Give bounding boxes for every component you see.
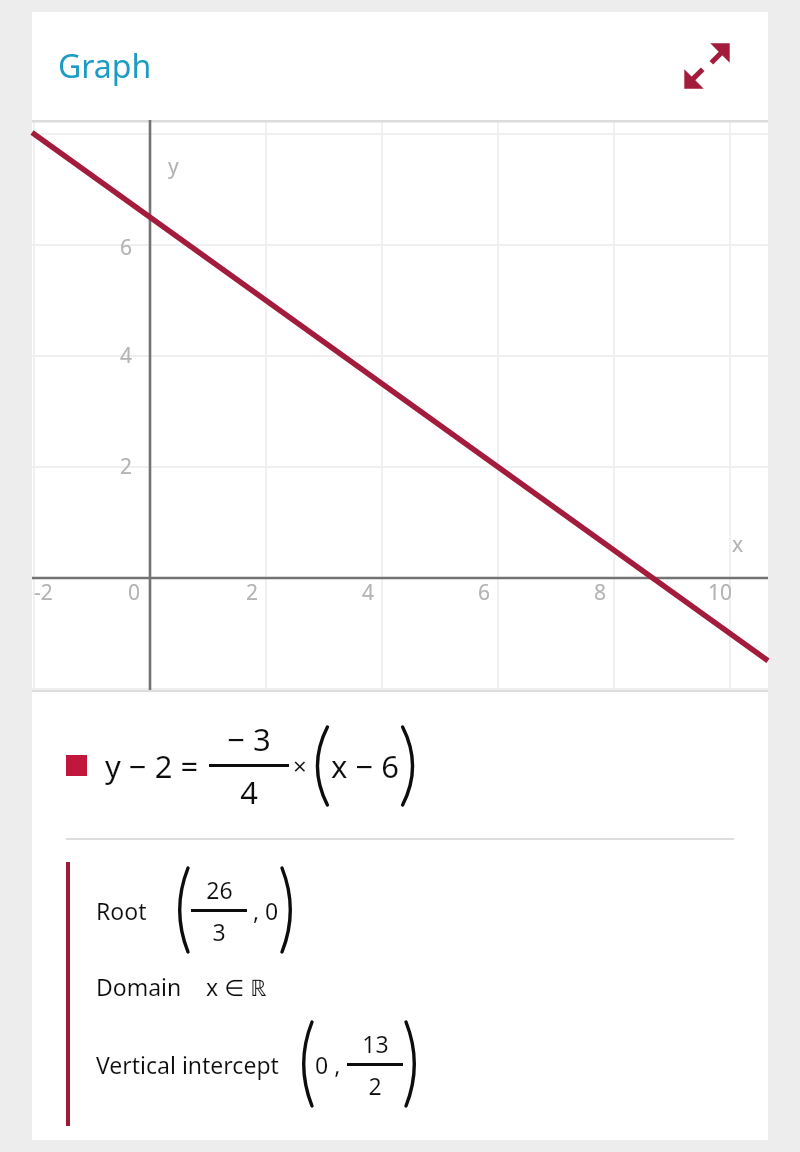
staticText: Graph (58, 44, 152, 88)
staticText: 0 , (315, 1049, 347, 1080)
staticText: , 0 (247, 895, 279, 926)
staticText: − 3 (227, 718, 271, 760)
button[interactable]: Graph (58, 44, 152, 88)
button[interactable]: Expand graph (680, 39, 734, 93)
staticText: Domain (96, 971, 182, 1002)
staticText: x ∈ ℝ (206, 971, 267, 1002)
staticText: Root (96, 895, 147, 926)
staticText: 2 (120, 452, 133, 481)
staticText: 2 (368, 1070, 382, 1101)
staticText: x (732, 530, 744, 559)
staticText: 4 (240, 771, 258, 813)
staticText: Vertical intercept (96, 1049, 279, 1080)
staticText: 10 (708, 578, 733, 607)
staticText: 4 (120, 341, 133, 370)
button[interactable]: Domain (96, 958, 768, 1014)
staticText: 13 (362, 1028, 389, 1059)
staticText: 4 (362, 578, 375, 607)
staticText: 26 (206, 874, 233, 905)
button[interactable]: Root (96, 862, 768, 958)
staticText: y − 2 = (105, 745, 199, 787)
staticText: x − 6 (331, 745, 399, 787)
staticText: 6 (478, 578, 491, 607)
staticText: 0 (128, 578, 141, 607)
staticText: 3 (212, 916, 226, 947)
staticText: -2 (34, 578, 53, 607)
staticText: 6 (120, 233, 133, 262)
staticText: × (293, 749, 307, 782)
staticText: 8 (594, 578, 607, 607)
staticText: 2 (246, 578, 259, 607)
button[interactable]: y − 2 = (32, 692, 768, 838)
staticText: y (168, 152, 179, 181)
button[interactable]: Vertical intercept (96, 1014, 768, 1114)
